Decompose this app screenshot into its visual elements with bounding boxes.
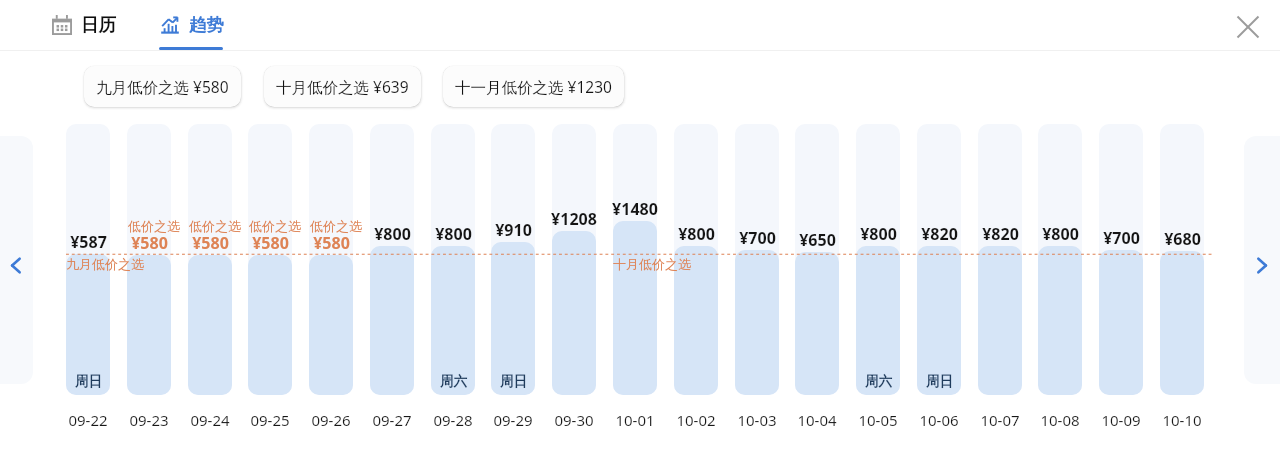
staticText: 10-04: [797, 410, 837, 430]
staticText: 09-24: [190, 410, 230, 430]
staticText: 09-22: [68, 410, 108, 430]
button[interactable]: 趋势: [159, 0, 223, 51]
button[interactable]: 十一月低价之选 ¥1230: [443, 66, 624, 107]
staticText: ¥800: [374, 223, 411, 245]
button[interactable]: [856, 246, 900, 395]
staticText: 十月低价之选: [613, 256, 691, 272]
button[interactable]: [248, 255, 292, 395]
staticText: ¥800: [860, 223, 897, 245]
staticText: ¥680: [1164, 228, 1201, 250]
staticText: ¥910: [495, 219, 532, 241]
button[interactable]: [491, 242, 535, 395]
button[interactable]: 日历: [52, 0, 116, 50]
staticText: 10-08: [1040, 410, 1080, 430]
staticText: ¥800: [1042, 223, 1079, 245]
staticText: ¥580: [313, 232, 350, 254]
staticText: ¥650: [799, 229, 836, 251]
staticText: 09-27: [372, 410, 412, 430]
staticText: ¥700: [1103, 227, 1140, 249]
staticText: ¥820: [982, 223, 1019, 245]
button[interactable]: [1038, 246, 1082, 395]
staticText: 10-05: [858, 410, 898, 430]
button[interactable]: [917, 246, 961, 395]
staticText: 低价之选: [128, 218, 180, 234]
staticText: 10-06: [919, 410, 959, 430]
staticText: ¥800: [435, 223, 472, 245]
staticText: 10-01: [615, 410, 655, 430]
staticText: ¥820: [921, 223, 958, 245]
staticText: ¥580: [192, 232, 229, 254]
button[interactable]: 十月低价之选 ¥639: [264, 66, 421, 107]
staticText: 低价之选: [249, 218, 301, 234]
staticText: 10-10: [1162, 410, 1202, 430]
button[interactable]: [188, 255, 232, 395]
button[interactable]: [978, 246, 1022, 395]
staticText: 周日: [75, 373, 102, 390]
staticText: 09-23: [129, 410, 169, 430]
staticText: 趋势: [189, 14, 224, 36]
staticText: 日历: [81, 14, 116, 36]
staticText: 10-03: [737, 410, 777, 430]
button[interactable]: [613, 221, 657, 395]
staticText: 周六: [865, 373, 892, 390]
staticText: ¥1208: [551, 208, 597, 230]
button[interactable]: [370, 246, 414, 395]
staticText: 十月低价之选 ¥639: [276, 76, 409, 97]
button[interactable]: [1160, 251, 1204, 395]
button[interactable]: Previous: [0, 136, 33, 384]
staticText: 九月低价之选: [66, 256, 144, 272]
staticText: 周日: [500, 373, 527, 390]
staticText: ¥1480: [612, 198, 658, 220]
button[interactable]: [552, 231, 596, 395]
button[interactable]: [735, 250, 779, 395]
staticText: 十一月低价之选 ¥1230: [455, 76, 612, 97]
button[interactable]: [127, 255, 171, 395]
button[interactable]: [1099, 250, 1143, 395]
staticText: 09-29: [493, 410, 533, 430]
staticText: ¥587: [70, 231, 107, 253]
staticText: 09-25: [250, 410, 290, 430]
button[interactable]: [309, 255, 353, 395]
button[interactable]: [674, 246, 718, 395]
staticText: 低价之选: [189, 218, 241, 234]
staticText: 周日: [926, 373, 953, 390]
button[interactable]: [66, 254, 110, 395]
button[interactable]: [795, 252, 839, 395]
staticText: 低价之选: [310, 218, 362, 234]
staticText: 10-02: [676, 410, 716, 430]
button[interactable]: 九月低价之选 ¥580: [84, 66, 241, 107]
staticText: 10-07: [980, 410, 1020, 430]
staticText: ¥700: [739, 227, 776, 249]
staticText: 09-30: [554, 410, 594, 430]
button[interactable]: Next: [1244, 136, 1280, 384]
button[interactable]: Close: [1228, 7, 1268, 47]
staticText: 10-09: [1101, 410, 1141, 430]
staticText: 九月低价之选 ¥580: [96, 76, 229, 97]
staticText: ¥800: [678, 223, 715, 245]
button[interactable]: [431, 246, 475, 395]
staticText: 09-28: [433, 410, 473, 430]
staticText: 周六: [440, 373, 467, 390]
staticText: ¥580: [131, 232, 168, 254]
staticText: ¥580: [252, 232, 289, 254]
staticText: 09-26: [311, 410, 351, 430]
